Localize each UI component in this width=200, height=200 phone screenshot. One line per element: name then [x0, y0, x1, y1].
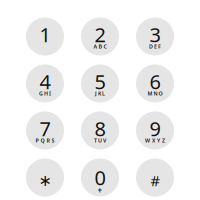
staticText: T U V [94, 137, 106, 144]
staticText: W X Y Z [145, 137, 165, 144]
button[interactable]: 2 A B C [81, 17, 119, 55]
button[interactable]: 6 M N O [136, 64, 174, 102]
staticText: 2 [94, 21, 105, 48]
button[interactable]: 9 W X Y Z [136, 111, 174, 149]
staticText: 8 [94, 115, 105, 142]
staticText: J K L [95, 90, 105, 97]
staticText: 7 [39, 115, 50, 142]
staticText: + [97, 185, 102, 196]
staticText: 6 [149, 68, 160, 95]
staticText: 5 [94, 68, 105, 95]
staticText: 9 [149, 115, 160, 142]
staticText: G H I [39, 90, 51, 97]
staticText: 3 [149, 21, 160, 48]
staticText: 4 [39, 68, 50, 95]
button[interactable]: 8 T U V [81, 111, 119, 149]
staticText: # [150, 171, 159, 190]
button[interactable]: 3 D E F [136, 17, 174, 55]
staticText: P Q R S [35, 137, 54, 144]
button[interactable]: 1 [26, 17, 64, 55]
staticText: A B C [93, 43, 106, 50]
button[interactable]: 0 plus [81, 158, 119, 196]
button[interactable]: Star [26, 158, 64, 196]
staticText: ∗ [38, 171, 51, 190]
button[interactable]: 7 P Q R S [26, 111, 64, 149]
staticText: 0 [94, 164, 105, 191]
button[interactable]: 5 J K L [81, 64, 119, 102]
staticText: D E F [149, 43, 161, 50]
staticText: M N O [147, 90, 162, 97]
button[interactable]: Pound [136, 158, 174, 196]
staticText: 1 [39, 21, 50, 48]
button[interactable]: 4 G H I [26, 64, 64, 102]
